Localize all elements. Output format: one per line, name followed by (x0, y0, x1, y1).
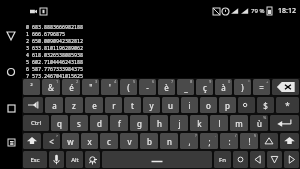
button[interactable]: g (130, 115, 148, 131)
staticText: ² (30, 83, 33, 91)
button[interactable]: $ (257, 97, 274, 113)
button[interactable]: u (162, 97, 179, 113)
button[interactable]: left (250, 151, 265, 168)
button[interactable]: Home (1, 62, 21, 82)
button[interactable]: a (45, 97, 63, 113)
button[interactable]: e (85, 97, 103, 113)
staticText: c (107, 136, 111, 147)
button[interactable]: f (110, 115, 128, 131)
button[interactable]: up (260, 133, 278, 149)
button[interactable]: circ (238, 97, 255, 113)
staticText: = (259, 82, 264, 93)
button[interactable]: - (139, 79, 156, 95)
button[interactable]: Hide keyboard (1, 132, 21, 152)
button[interactable]: p (219, 97, 236, 113)
staticText: ( (127, 82, 130, 93)
button[interactable]: ( (120, 79, 137, 95)
button[interactable]: o (200, 97, 217, 113)
button[interactable]: Back (1, 26, 21, 46)
staticText: e (92, 100, 97, 111)
button[interactable]: k (190, 115, 208, 131)
button[interactable]: ç (196, 79, 213, 95)
button[interactable]: = (253, 79, 270, 95)
button[interactable]: j (170, 115, 188, 131)
button[interactable]: à (215, 79, 232, 95)
staticText: - (146, 82, 149, 93)
button[interactable]: Ctrl (23, 115, 49, 131)
button[interactable]: h (150, 115, 168, 131)
staticText: & (48, 82, 54, 93)
button[interactable]: shift (280, 133, 299, 149)
button[interactable]: v (120, 133, 138, 149)
button[interactable]: del (272, 79, 299, 95)
button[interactable]: ; (200, 133, 218, 149)
staticText: 9 (209, 79, 212, 84)
staticText: d (97, 118, 102, 129)
staticText: é (69, 82, 74, 93)
button[interactable]: l (210, 115, 228, 131)
staticText: 7 573.2467041015625 (26, 73, 84, 78)
button[interactable]: z (65, 97, 83, 113)
button[interactable]: mic (49, 151, 64, 168)
staticText: 3 633.8101196289062 (26, 45, 84, 52)
button[interactable]: tab (23, 97, 43, 113)
staticText: è (164, 82, 169, 93)
button[interactable]: down (267, 151, 282, 168)
button[interactable]: c (100, 133, 118, 149)
button[interactable]: Fn (214, 151, 231, 168)
button[interactable]: ² (23, 79, 40, 95)
button[interactable]: right (284, 151, 299, 168)
staticText: h (157, 118, 162, 129)
button[interactable]: dot (233, 151, 248, 168)
staticText: k (197, 118, 202, 129)
button[interactable]: shift (23, 133, 41, 149)
button[interactable]: space (102, 151, 212, 168)
button[interactable]: lang (85, 151, 100, 168)
staticText: : (228, 136, 231, 147)
button[interactable]: i (181, 97, 198, 113)
staticText: Esc (30, 156, 40, 164)
staticText: < (49, 136, 54, 147)
button[interactable]: è (158, 79, 175, 95)
button[interactable]: r (105, 97, 122, 113)
button[interactable]: , (180, 133, 198, 149)
button[interactable]: s (70, 115, 88, 131)
button[interactable]: " (82, 79, 99, 95)
button[interactable]: Recents (1, 98, 21, 118)
staticText: 4 (114, 79, 117, 84)
button[interactable]: y (143, 97, 160, 113)
button[interactable]: n (160, 133, 178, 149)
staticText: ° (248, 79, 250, 84)
staticText: 3 (95, 79, 98, 84)
button[interactable]: & (42, 79, 60, 95)
button[interactable]: d (90, 115, 108, 131)
staticText: q (57, 118, 62, 129)
staticText: , (188, 136, 191, 147)
button[interactable]: x (81, 133, 98, 149)
staticText: % (263, 115, 267, 120)
button[interactable]: Alt (66, 151, 83, 168)
button[interactable]: m (230, 115, 248, 131)
button[interactable]: _ (177, 79, 194, 95)
button[interactable]: < (43, 133, 60, 149)
button[interactable]: é (62, 79, 80, 95)
staticText: f (118, 118, 121, 129)
button[interactable]: Esc (23, 151, 47, 168)
button[interactable]: ) (234, 79, 251, 95)
staticText: " (89, 82, 93, 93)
button[interactable]: * (276, 97, 299, 113)
button[interactable]: t (124, 97, 141, 113)
button[interactable]: enter (270, 115, 299, 131)
staticText: * (285, 100, 290, 111)
button[interactable]: q (51, 115, 68, 131)
button[interactable]: w (62, 133, 79, 149)
button[interactable]: ' (101, 79, 118, 95)
button[interactable]: b (140, 133, 158, 149)
staticText: w (67, 136, 74, 147)
button[interactable]: ù (250, 115, 268, 131)
staticText: ? (195, 133, 197, 138)
staticText: z (72, 100, 76, 111)
button[interactable]: ! (240, 133, 258, 149)
button[interactable]: : (220, 133, 238, 149)
staticText: Fn (219, 156, 226, 164)
